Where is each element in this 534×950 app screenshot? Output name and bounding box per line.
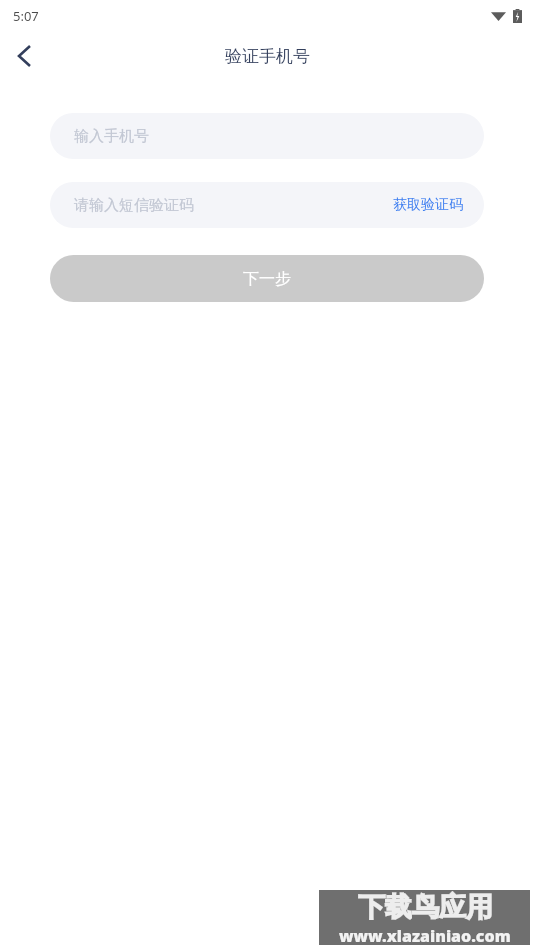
staticText: 5:07 [13, 7, 39, 25]
button[interactable]: Back [0, 32, 48, 80]
staticText: 验证手机号 [225, 46, 310, 67]
staticText: 请输入短信验证码 [74, 196, 194, 215]
staticText: 下载鸟应用 [358, 890, 493, 924]
button[interactable]: 输入手机号 [50, 113, 484, 159]
button[interactable]: 下一步 [50, 255, 484, 302]
button[interactable]: 获取验证码 [372, 182, 484, 228]
staticText: 获取验证码 [393, 196, 463, 214]
staticText: 下一步 [243, 269, 291, 289]
staticText: www.xlazainiao.com [339, 925, 511, 945]
staticText: 输入手机号 [74, 127, 149, 146]
